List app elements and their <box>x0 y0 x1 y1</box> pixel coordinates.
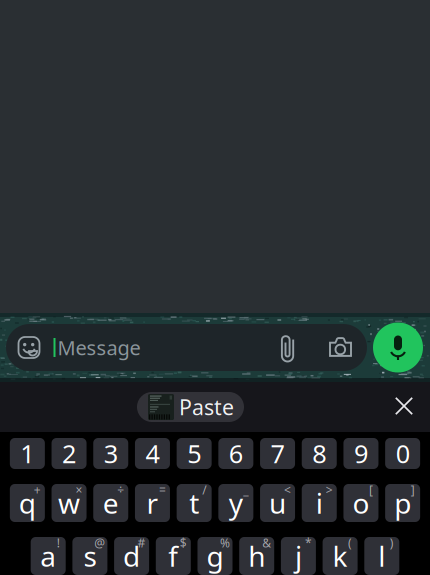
staticText: d <box>123 537 140 575</box>
staticText: × <box>75 482 82 498</box>
button[interactable]: 9 <box>343 438 378 469</box>
button[interactable]: 5 <box>177 438 212 469</box>
button[interactable]: t <box>177 484 212 522</box>
staticText: @ <box>94 535 105 551</box>
button[interactable]: l <box>364 537 399 575</box>
button[interactable]: 2 <box>51 438 86 469</box>
staticText: [ <box>369 482 373 498</box>
staticText: 5 <box>187 437 201 470</box>
button[interactable]: g <box>197 537 232 575</box>
button[interactable]: q <box>10 484 45 522</box>
staticText: s <box>83 537 96 575</box>
staticText: l <box>378 537 385 575</box>
staticText: q <box>19 484 36 522</box>
staticText: ( <box>348 535 352 551</box>
button[interactable]: a <box>31 537 66 575</box>
staticText: h <box>248 537 265 575</box>
button[interactable]: y <box>218 484 253 522</box>
button[interactable]: j <box>281 537 316 575</box>
button[interactable]: 6 <box>218 438 253 469</box>
staticText: * <box>305 535 312 551</box>
staticText: r <box>146 484 158 522</box>
staticText: u <box>269 484 286 522</box>
staticText: $ <box>180 535 187 551</box>
staticText: 8 <box>312 437 326 470</box>
staticText: a <box>40 537 56 575</box>
staticText: w <box>58 484 80 522</box>
button[interactable]: 1 <box>10 438 45 469</box>
staticText: 0 <box>396 437 410 470</box>
button[interactable]: i <box>302 484 337 522</box>
button[interactable]: k <box>323 537 358 575</box>
button[interactable]: h <box>239 537 274 575</box>
staticText: p <box>394 484 411 522</box>
staticText: 6 <box>229 437 243 470</box>
staticText: 9 <box>354 437 368 470</box>
staticText: o <box>352 484 369 522</box>
button[interactable]: s <box>72 537 107 575</box>
button[interactable]: u <box>260 484 295 522</box>
staticText: < <box>284 482 291 498</box>
staticText: # <box>138 535 146 551</box>
staticText: + <box>34 482 41 498</box>
staticText: > <box>326 482 333 498</box>
staticText: ) <box>390 535 394 551</box>
staticText: & <box>262 535 271 551</box>
button[interactable]: o <box>343 484 378 522</box>
button[interactable]: 8 <box>302 438 337 469</box>
button[interactable]: e <box>93 484 128 522</box>
staticText: / <box>202 482 206 498</box>
button[interactable]: r <box>135 484 170 522</box>
button[interactable]: Message <box>6 324 367 371</box>
staticText: ! <box>57 535 60 551</box>
staticText: _ <box>243 482 248 498</box>
staticText: 3 <box>104 437 118 470</box>
staticText: 1 <box>20 437 34 470</box>
staticText: j <box>295 537 302 575</box>
button[interactable]: d <box>114 537 149 575</box>
staticText: t <box>189 484 199 522</box>
staticText: y <box>229 484 243 522</box>
staticText: ] <box>411 482 415 498</box>
button[interactable]: 7 <box>260 438 295 469</box>
button[interactable]: 4 <box>135 438 170 469</box>
button[interactable]: Paste <box>137 392 244 422</box>
staticText: k <box>333 537 348 575</box>
staticText: ÷ <box>117 482 124 498</box>
staticText: 4 <box>145 437 159 470</box>
staticText: 7 <box>270 437 284 470</box>
staticText: Paste <box>179 393 234 421</box>
button[interactable]: p <box>385 484 420 522</box>
staticText: g <box>206 537 223 575</box>
button[interactable]: 0 <box>385 438 420 469</box>
button[interactable]: Dismiss paste suggestion <box>387 389 421 423</box>
button[interactable]: 3 <box>93 438 128 469</box>
staticText: 2 <box>62 437 76 470</box>
staticText: i <box>316 484 323 522</box>
staticText: = <box>159 482 166 498</box>
button[interactable]: Record voice message <box>373 322 423 372</box>
staticText: Message <box>57 334 140 361</box>
staticText: f <box>168 537 178 575</box>
staticText: % <box>220 535 230 551</box>
button[interactable]: w <box>51 484 86 522</box>
staticText: e <box>103 484 119 522</box>
button[interactable]: f <box>156 537 191 575</box>
